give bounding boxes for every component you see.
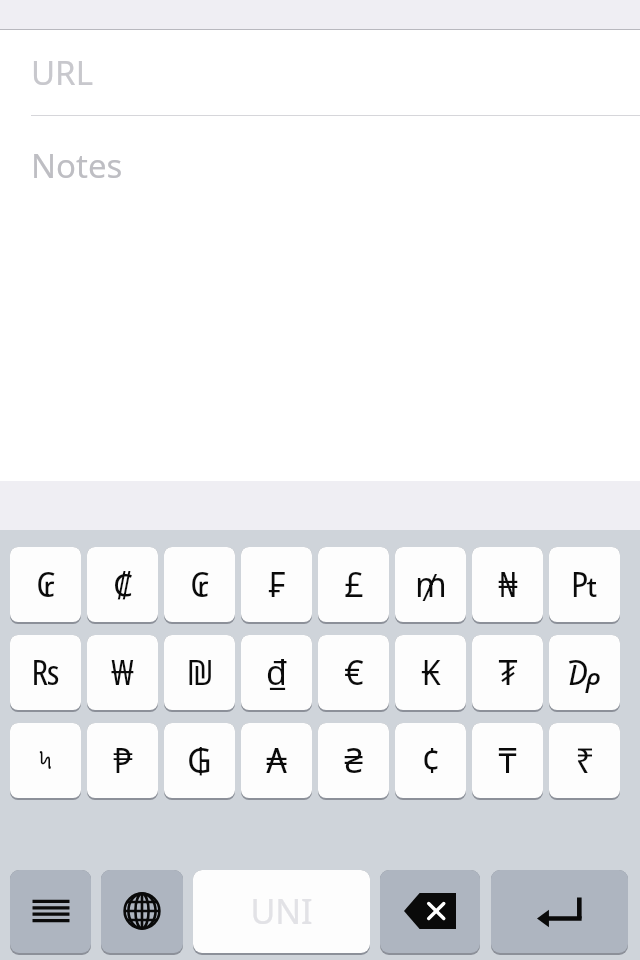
button[interactable]: ₨: [10, 635, 81, 712]
button[interactable]: ₧: [549, 547, 620, 624]
staticText: ₡: [113, 561, 133, 607]
button[interactable]: ₭: [395, 635, 466, 712]
button[interactable]: ₪: [164, 635, 235, 712]
button[interactable]: Keyboard menu: [10, 870, 91, 955]
staticText: €: [344, 649, 364, 695]
staticText: ₲: [187, 737, 212, 783]
staticText: ₫: [266, 649, 287, 695]
staticText: ₳: [266, 737, 287, 783]
staticText: ₱: [113, 737, 133, 783]
staticText: ₢: [190, 561, 210, 607]
staticText: ¢: [421, 737, 441, 783]
button[interactable]: ₳: [241, 723, 312, 800]
staticText: £: [344, 561, 364, 607]
button[interactable]: ₫: [241, 635, 312, 712]
staticText: ৸: [39, 743, 52, 777]
button[interactable]: ₸: [472, 723, 543, 800]
button[interactable]: ₯: [549, 635, 620, 712]
staticText: ₦: [498, 561, 518, 607]
button[interactable]: ₩: [87, 635, 158, 712]
button[interactable]: ₴: [318, 723, 389, 800]
staticText: ₪: [186, 649, 214, 695]
button[interactable]: ¢: [395, 723, 466, 800]
button[interactable]: ₲: [164, 723, 235, 800]
staticText: ₧: [571, 561, 598, 607]
staticText: UNI: [250, 888, 313, 934]
staticText: URL: [31, 50, 93, 95]
button[interactable]: Switch language: [101, 870, 183, 955]
staticText: ₹: [575, 737, 595, 783]
button[interactable]: ₥: [395, 547, 466, 624]
staticText: ₸: [498, 737, 517, 783]
button[interactable]: ₡: [87, 547, 158, 624]
button[interactable]: ₣: [241, 547, 312, 624]
staticText: ₥: [415, 561, 447, 607]
button[interactable]: ৸: [10, 723, 81, 800]
staticText: ₯: [568, 649, 601, 695]
button[interactable]: ₮: [472, 635, 543, 712]
button[interactable]: Notes: [0, 116, 640, 481]
button[interactable]: Backspace: [380, 870, 480, 955]
staticText: ₩: [111, 649, 134, 695]
staticText: ₭: [421, 649, 441, 695]
staticText: ₣: [267, 561, 287, 607]
button[interactable]: ₢: [164, 547, 235, 624]
button[interactable]: Return: [491, 870, 628, 955]
staticText: ₴: [344, 737, 363, 783]
button[interactable]: £: [318, 547, 389, 624]
button[interactable]: ₱: [87, 723, 158, 800]
button[interactable]: URL: [0, 30, 640, 115]
button[interactable]: €: [318, 635, 389, 712]
staticText: ₨: [31, 649, 60, 695]
button[interactable]: ₢: [10, 547, 81, 624]
staticText: ₢: [36, 561, 56, 607]
staticText: Notes: [31, 143, 123, 188]
button[interactable]: ₦: [472, 547, 543, 624]
button[interactable]: UNI: [193, 870, 370, 955]
staticText: ₮: [498, 649, 518, 695]
button[interactable]: ₹: [549, 723, 620, 800]
